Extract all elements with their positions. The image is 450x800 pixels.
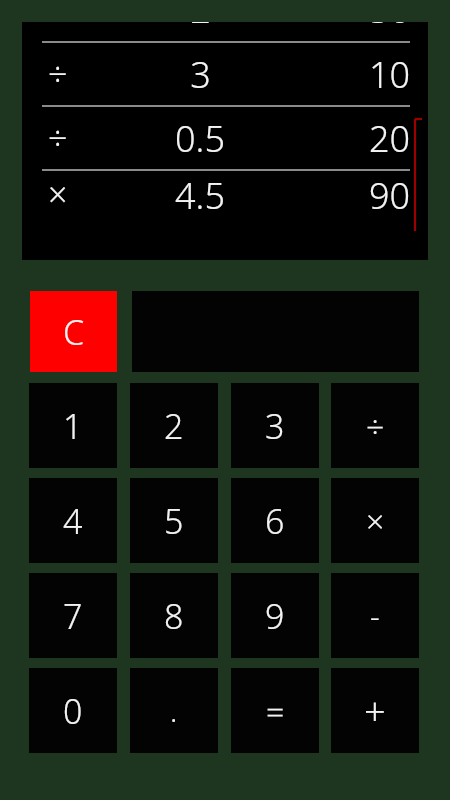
staticText: 4.5 [175, 171, 225, 215]
button[interactable]: . [130, 668, 218, 753]
button[interactable]: 9 [231, 573, 319, 658]
button[interactable]: C [30, 291, 117, 372]
staticText: 10 [368, 50, 410, 99]
staticText: 7 [63, 593, 83, 639]
staticText: 90 [368, 171, 410, 215]
staticText: × [48, 171, 68, 215]
staticText: 1 [63, 403, 83, 449]
button[interactable]: + [331, 668, 419, 753]
staticText: 2 [164, 403, 184, 449]
button[interactable]: 2 [130, 383, 218, 468]
button[interactable]: × [331, 478, 419, 563]
staticText: 5 [164, 498, 184, 544]
button[interactable]: 1 [29, 383, 117, 468]
button[interactable]: = [231, 668, 319, 753]
button[interactable]: 6 [231, 478, 319, 563]
staticText: - [370, 595, 380, 636]
button[interactable]: 0 [29, 668, 117, 753]
button[interactable]: ÷ [331, 383, 419, 468]
staticText: 9 [265, 593, 285, 639]
staticText: 3 [190, 50, 211, 99]
staticText: 0 [63, 688, 83, 734]
staticText: 30 [368, 22, 410, 34]
button[interactable]: - [331, 573, 419, 658]
staticText: 2 [190, 22, 211, 34]
staticText: ÷ [366, 404, 385, 448]
button[interactable]: 8 [130, 573, 218, 658]
button[interactable]: 7 [29, 573, 117, 658]
staticText: ÷ [48, 115, 68, 161]
staticText: + [364, 685, 386, 737]
staticText: . [170, 690, 178, 731]
button[interactable]: 5 [130, 478, 218, 563]
staticText: 4 [63, 498, 83, 544]
button[interactable]: 4 [29, 478, 117, 563]
staticText: 0.5 [175, 114, 225, 163]
staticText: 20 [368, 114, 410, 163]
staticText: 3 [265, 403, 285, 449]
button[interactable]: 3 [231, 383, 319, 468]
staticText: × [366, 499, 385, 543]
staticText: 6 [265, 498, 285, 544]
staticText: 8 [164, 593, 184, 639]
button[interactable]: − [22, 22, 428, 260]
staticText: ÷ [48, 51, 68, 97]
staticText: = [266, 689, 285, 733]
staticText: C [63, 309, 85, 355]
